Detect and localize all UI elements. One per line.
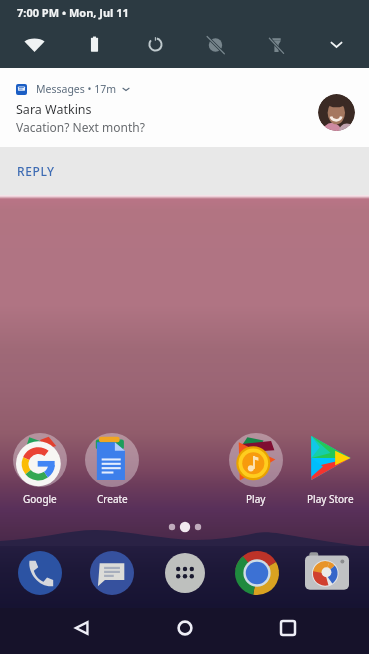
- staticText: REPLY: [17, 163, 55, 179]
- button[interactable]: REPLY: [0, 147, 369, 195]
- staticText: Google: [23, 492, 57, 506]
- button[interactable]: Battery: [77, 27, 111, 61]
- staticText: Play: [246, 492, 266, 506]
- button[interactable]: Google: [13, 433, 67, 506]
- button[interactable]: Camera: [305, 551, 349, 595]
- button[interactable]: Recent apps: [268, 608, 308, 648]
- button[interactable]: Back: [62, 608, 102, 648]
- button[interactable]: Expand quick settings: [319, 27, 353, 61]
- button[interactable]: Create: [85, 433, 139, 506]
- button[interactable]: Play Store: [303, 433, 357, 506]
- button[interactable]: Home: [165, 608, 205, 648]
- button[interactable]: Do not disturb: [198, 27, 232, 61]
- staticText: 7:00 PM • Mon, Jul 11: [17, 5, 129, 20]
- staticText: Messages • 17m: [36, 82, 117, 96]
- button[interactable]: All apps: [165, 551, 205, 591]
- button[interactable]: Auto rotate: [138, 27, 172, 61]
- button[interactable]: Messages: [90, 551, 134, 595]
- button[interactable]: Chrome: [235, 551, 279, 595]
- staticText: Vacation? Next month?: [16, 119, 145, 135]
- button[interactable]: Messages • 17m: [0, 68, 369, 147]
- button[interactable]: Phone: [18, 551, 62, 595]
- button[interactable]: Flashlight: [259, 27, 293, 61]
- button[interactable]: Sara Watkins avatar: [318, 94, 355, 131]
- staticText: Sara Watkins: [16, 101, 92, 118]
- button[interactable]: Wi-Fi: [17, 27, 51, 61]
- staticText: Play Store: [307, 492, 354, 506]
- button[interactable]: Play: [229, 433, 283, 506]
- staticText: Create: [97, 492, 128, 506]
